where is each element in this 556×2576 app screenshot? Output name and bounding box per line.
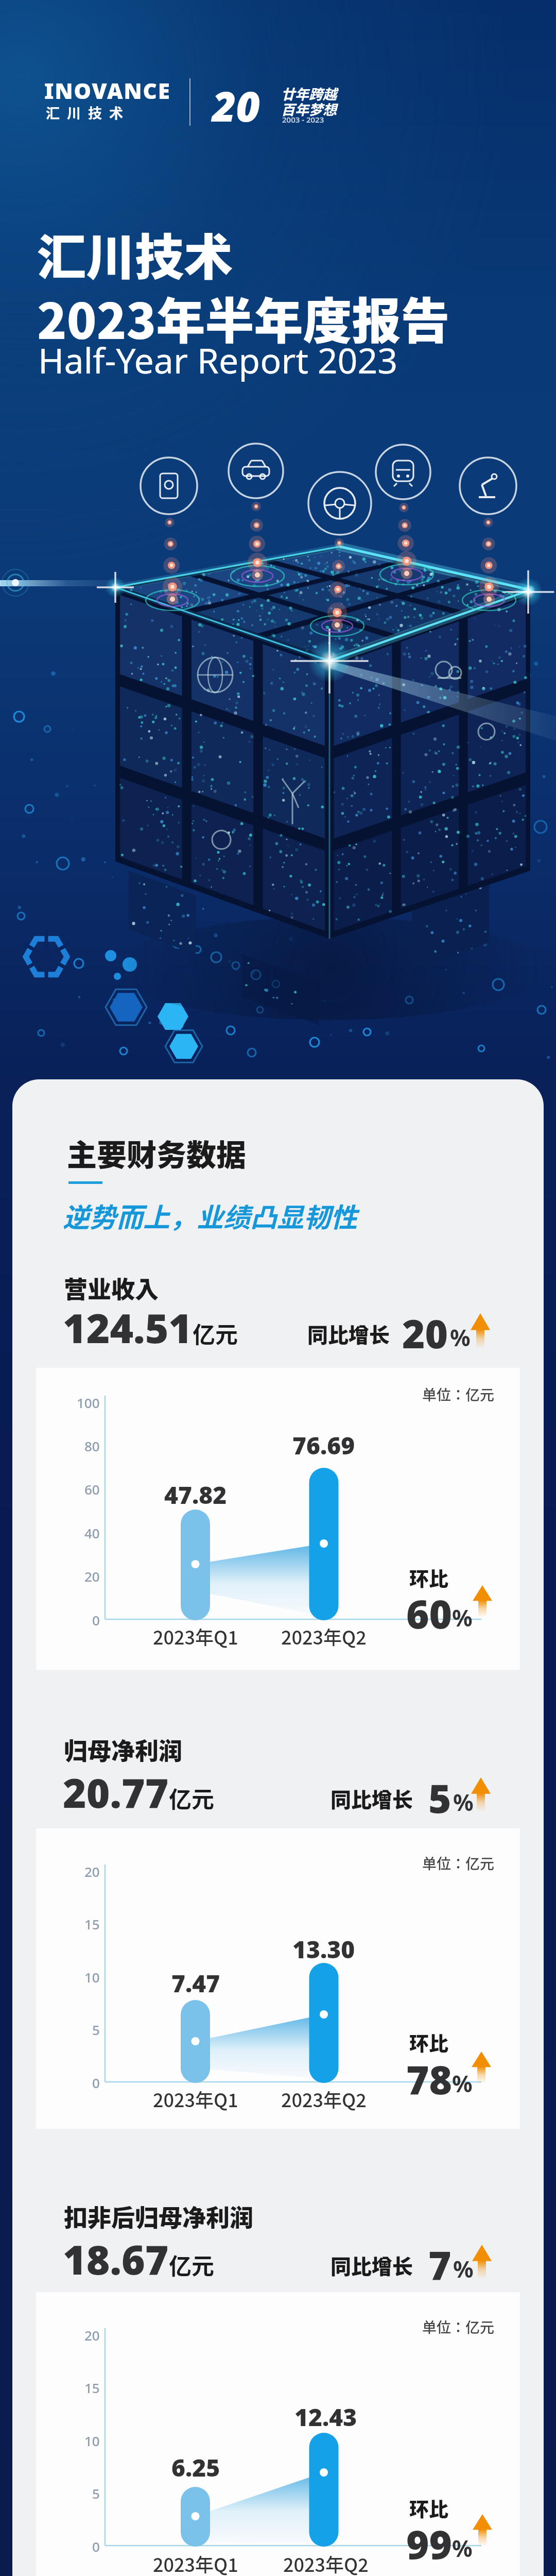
staticText: Half-Year Report 2023: [38, 336, 398, 384]
button[interactable]: [12, 1079, 544, 2576]
staticText: 20: [84, 2326, 100, 2344]
staticText: 7: [428, 2238, 451, 2292]
staticText: 营业收入: [64, 1270, 159, 1305]
staticText: 廿年跨越: [281, 83, 337, 104]
staticText: 5: [428, 1771, 451, 1825]
staticText: 环比: [409, 1563, 449, 1591]
staticText: 扣非后归母净利润: [64, 2199, 253, 2233]
staticText: 20: [84, 1862, 100, 1880]
staticText: 环比: [409, 2028, 449, 2056]
staticText: 20: [84, 1567, 100, 1585]
staticText: 60: [84, 1480, 100, 1498]
staticText: 10: [84, 2432, 100, 2450]
staticText: INOVANCE: [44, 76, 171, 105]
staticText: 80: [84, 1437, 100, 1455]
staticText: 同比增长: [331, 1784, 413, 1814]
staticText: 13.30: [292, 1933, 355, 1965]
staticText: 60: [406, 1587, 453, 1640]
staticText: 2023年Q2: [281, 2086, 367, 2112]
staticText: 2003 - 2023: [282, 114, 324, 125]
staticText: 0: [92, 1611, 100, 1629]
staticText: 40: [84, 1524, 100, 1542]
staticText: 6.25: [171, 2451, 220, 2484]
staticText: 归母净利润: [64, 1732, 182, 1767]
staticText: 99: [406, 2517, 453, 2571]
staticText: 20: [402, 1307, 448, 1360]
staticText: 100: [77, 1394, 100, 1412]
staticText: %: [453, 2253, 474, 2284]
staticText: 2023年Q2: [283, 2550, 369, 2576]
staticText: 7.47: [171, 1967, 220, 1999]
staticText: 20: [212, 77, 260, 133]
staticText: 汇川技术: [37, 218, 233, 290]
staticText: 亿元: [169, 1782, 214, 1815]
staticText: 5: [92, 2484, 100, 2502]
staticText: 0: [92, 2074, 100, 2092]
staticText: 0: [92, 2537, 100, 2555]
staticText: %: [452, 2068, 473, 2099]
staticText: 亿元: [169, 2248, 214, 2281]
staticText: 47.82: [164, 1479, 227, 1511]
staticText: 5: [92, 2021, 100, 2039]
staticText: 2023年半年度报告: [37, 282, 450, 353]
staticText: 78: [406, 2053, 453, 2106]
staticText: 主要财务数据: [67, 1131, 247, 1175]
staticText: 20.77: [63, 1765, 169, 1820]
staticText: 2023年Q1: [153, 2086, 238, 2112]
staticText: 15: [84, 1915, 100, 1933]
staticText: %: [453, 1787, 474, 1818]
staticText: 同比增长: [331, 2250, 413, 2280]
staticText: 百年梦想: [281, 99, 337, 119]
staticText: 124.51: [63, 1300, 193, 1355]
staticText: %: [452, 1602, 473, 1633]
staticText: %: [452, 2533, 473, 2564]
staticText: 亿元: [193, 1317, 238, 1350]
staticText: 12.43: [294, 2401, 357, 2433]
staticText: 汇川技术: [46, 103, 130, 123]
staticText: 单位：亿元: [422, 1384, 495, 1405]
staticText: 2023年Q2: [281, 1623, 367, 1650]
staticText: 2023年Q1: [153, 2550, 238, 2576]
staticText: 18.67: [63, 2232, 169, 2286]
staticText: 单位：亿元: [422, 2316, 495, 2337]
staticText: 环比: [409, 2494, 449, 2522]
staticText: 15: [84, 2379, 100, 2397]
staticText: %: [450, 1322, 471, 1353]
staticText: 逆势而上，业绩凸显韧性: [63, 1196, 358, 1235]
staticText: 76.69: [292, 1429, 355, 1462]
staticText: 单位：亿元: [422, 1853, 495, 1874]
staticText: 10: [84, 1968, 100, 1986]
staticText: 2023年Q1: [153, 1623, 238, 1650]
staticText: 同比增长: [307, 1319, 390, 1349]
